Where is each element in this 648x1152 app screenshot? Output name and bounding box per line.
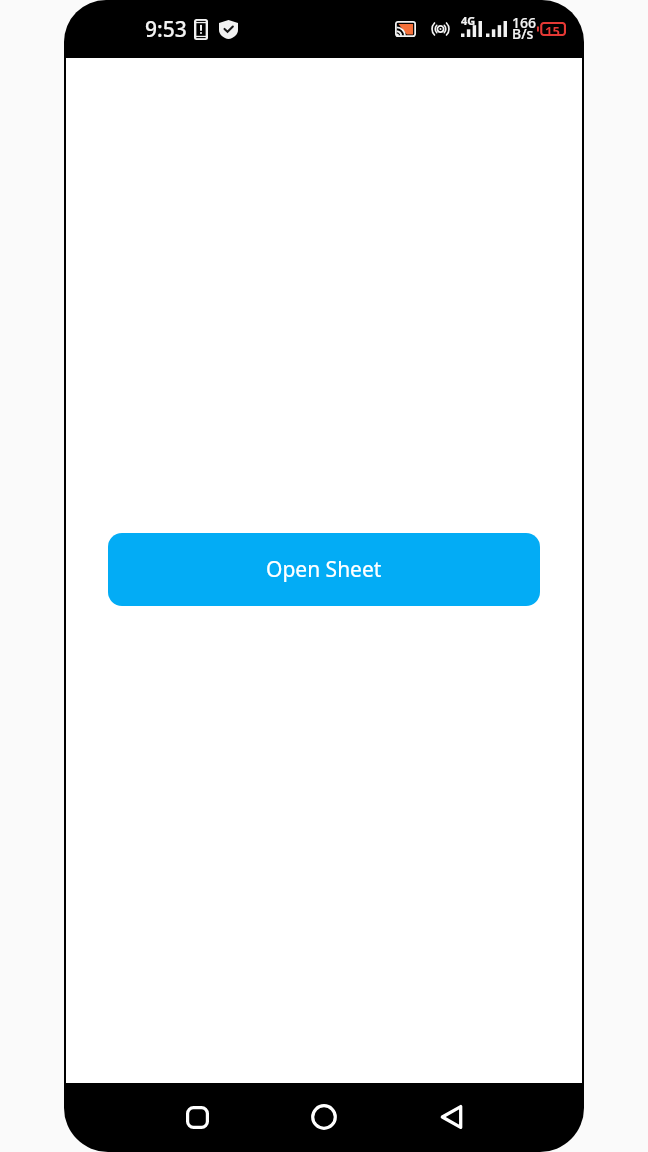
staticText: 166 xyxy=(512,13,537,32)
staticText: 4G xyxy=(461,13,476,28)
button[interactable]: Back xyxy=(427,1093,475,1141)
staticText: 9:53 xyxy=(145,15,187,44)
staticText: 15 xyxy=(545,22,560,36)
button[interactable]: Recents xyxy=(173,1093,221,1141)
button[interactable]: Open Sheet xyxy=(108,533,540,606)
button[interactable]: Home xyxy=(300,1093,348,1141)
staticText: B/s xyxy=(512,24,534,43)
staticText: Open Sheet xyxy=(266,555,382,584)
